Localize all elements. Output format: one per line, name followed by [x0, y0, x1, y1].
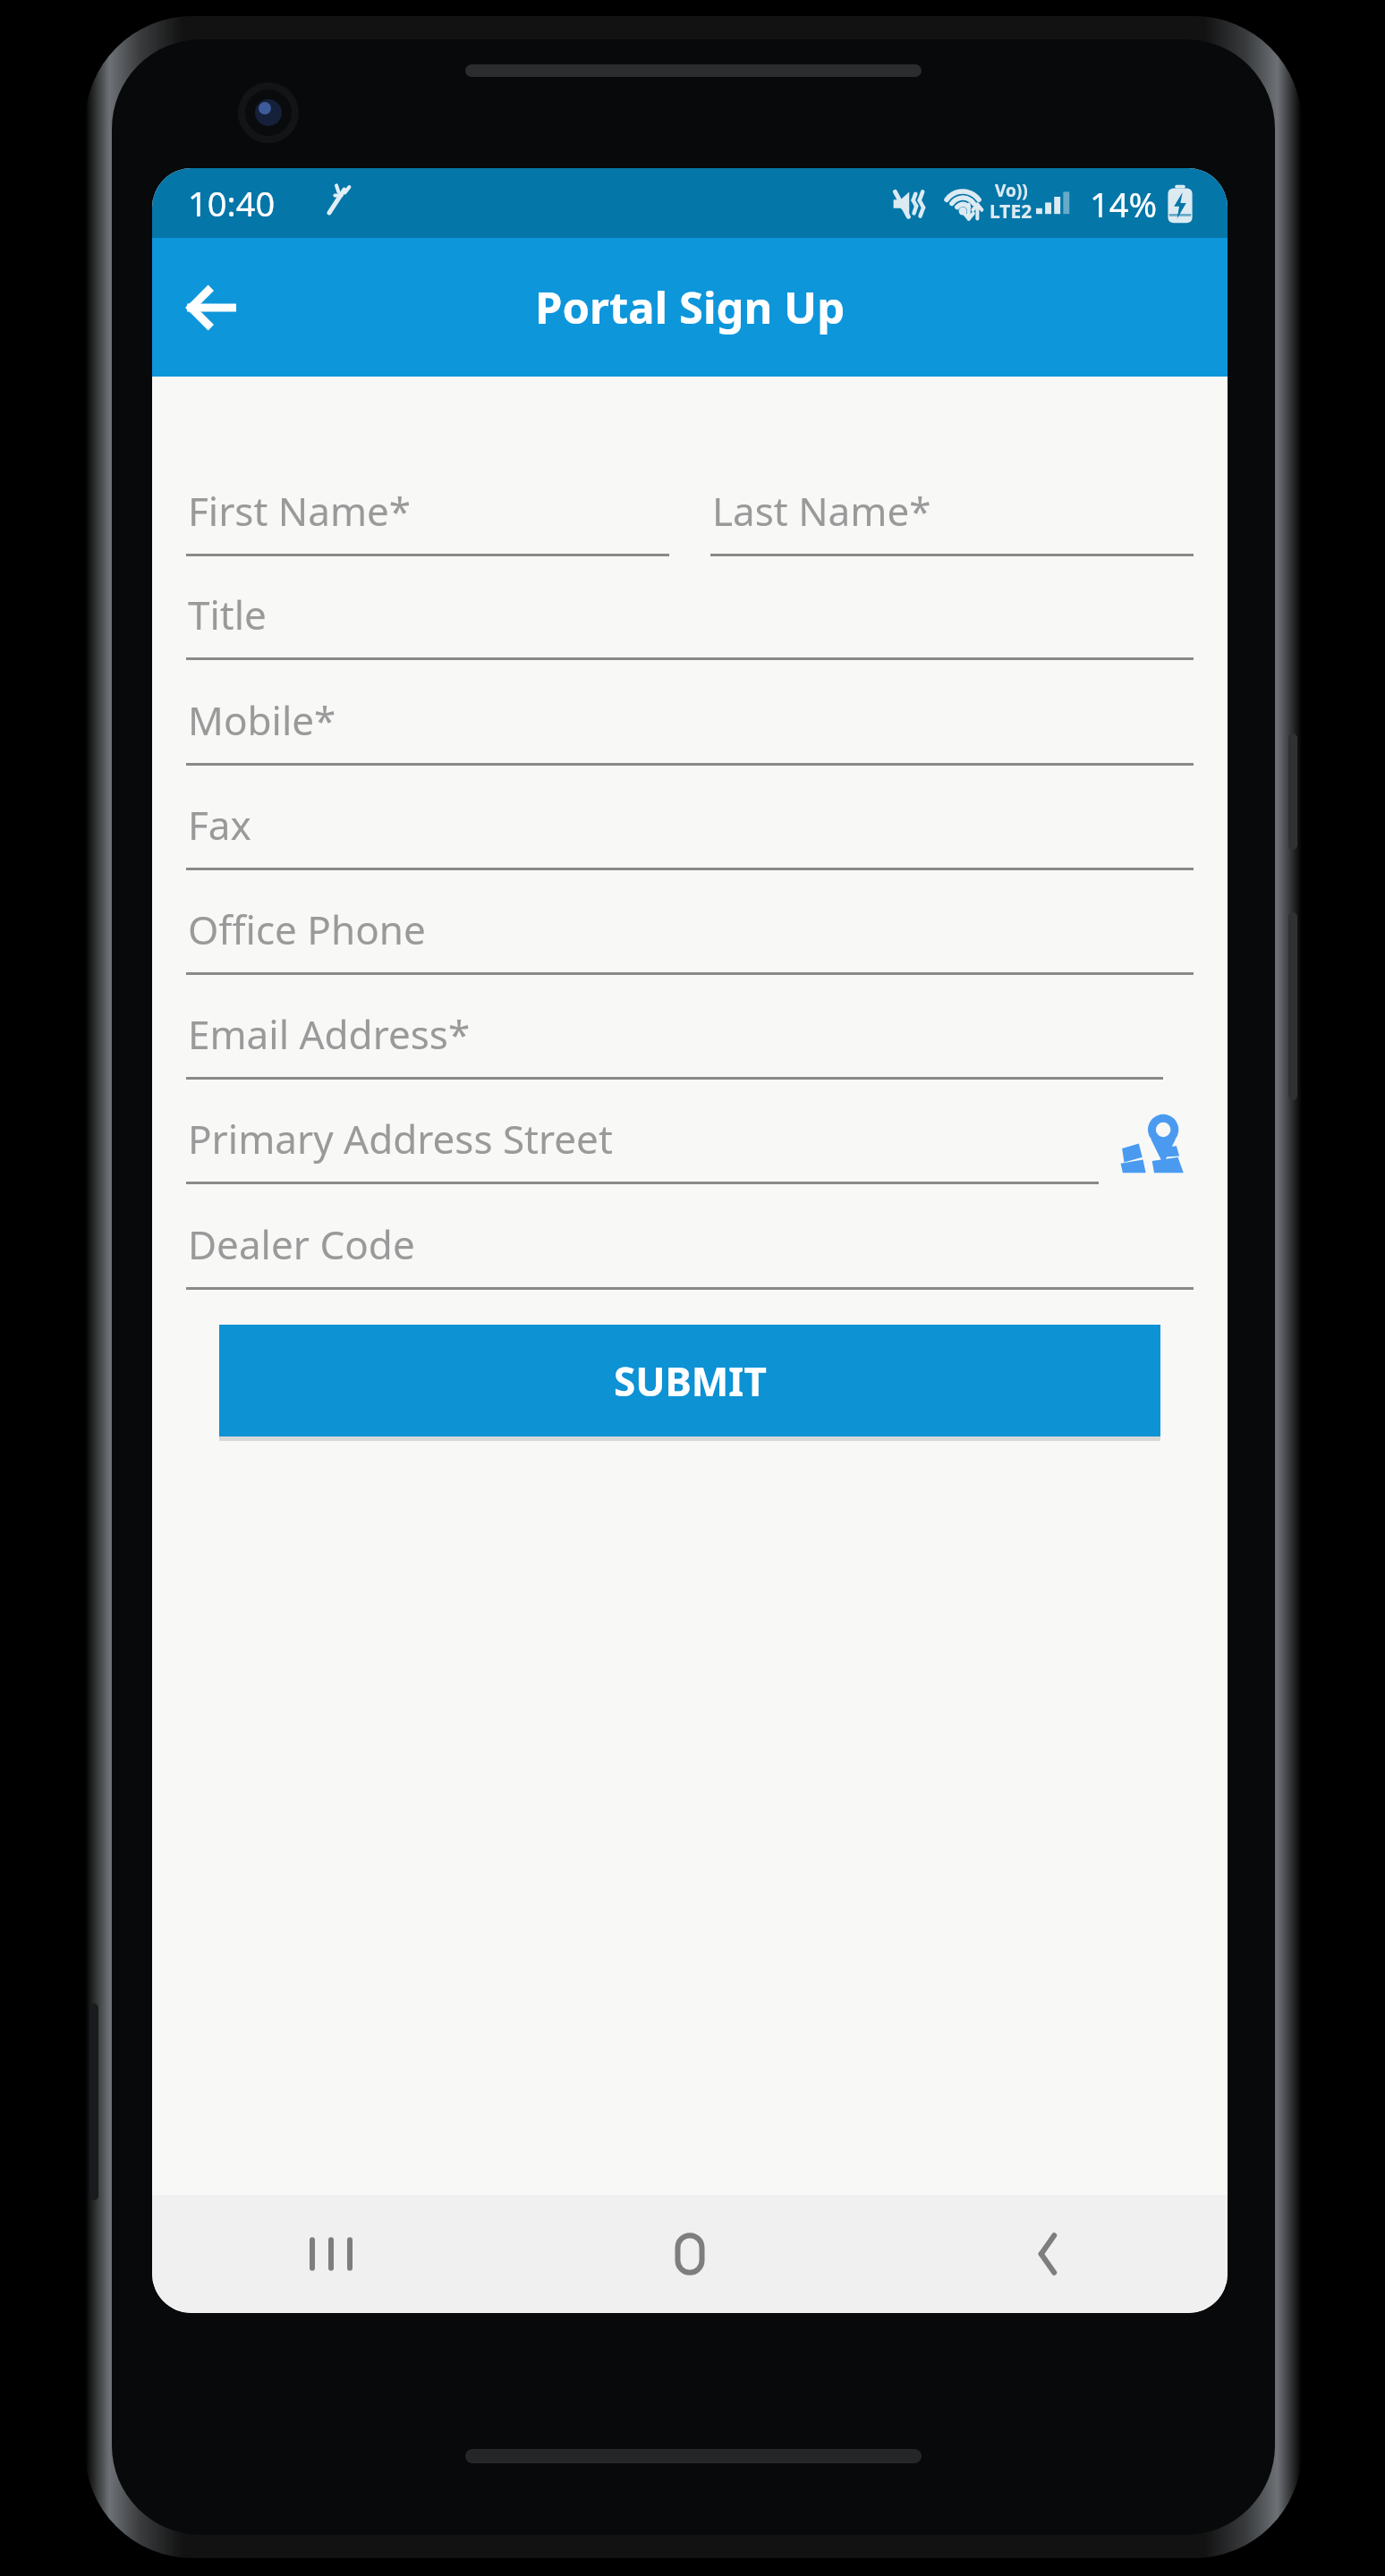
button[interactable]: Email Address*: [186, 1007, 1163, 1080]
staticText: Last Name*: [712, 484, 931, 538]
staticText: Office Phone: [188, 902, 426, 956]
staticText: Title: [188, 588, 267, 641]
button[interactable]: First Name*: [186, 484, 669, 556]
button[interactable]: Pick address on map: [1111, 1099, 1197, 1185]
staticText: LTE2: [990, 199, 1032, 225]
button[interactable]: Recent apps: [152, 2195, 510, 2313]
staticText: Fax: [188, 798, 251, 852]
button[interactable]: Back: [869, 2195, 1228, 2313]
button[interactable]: Office Phone: [186, 902, 1194, 975]
staticText: 14%: [1090, 181, 1158, 227]
staticText: Dealer Code: [188, 1217, 415, 1271]
button[interactable]: Title: [186, 588, 1194, 660]
staticText: 10:40: [188, 180, 276, 226]
button[interactable]: Home: [510, 2195, 869, 2313]
button[interactable]: Primary Address Street: [186, 1112, 1099, 1184]
staticText: Portal Sign Up: [535, 277, 845, 337]
button[interactable]: Fax: [186, 798, 1194, 870]
staticText: Primary Address Street: [188, 1112, 613, 1165]
staticText: Email Address*: [188, 1007, 471, 1061]
button[interactable]: Last Name*: [710, 484, 1194, 556]
staticText: Mobile*: [188, 693, 336, 747]
staticText: Vo)): [995, 179, 1028, 202]
staticText: First Name*: [188, 484, 412, 538]
button[interactable]: SUBMIT: [219, 1325, 1160, 1436]
button[interactable]: Dealer Code: [186, 1217, 1194, 1290]
button[interactable]: Back: [168, 265, 254, 351]
staticText: SUBMIT: [614, 1354, 767, 1408]
button[interactable]: Mobile*: [186, 693, 1194, 766]
